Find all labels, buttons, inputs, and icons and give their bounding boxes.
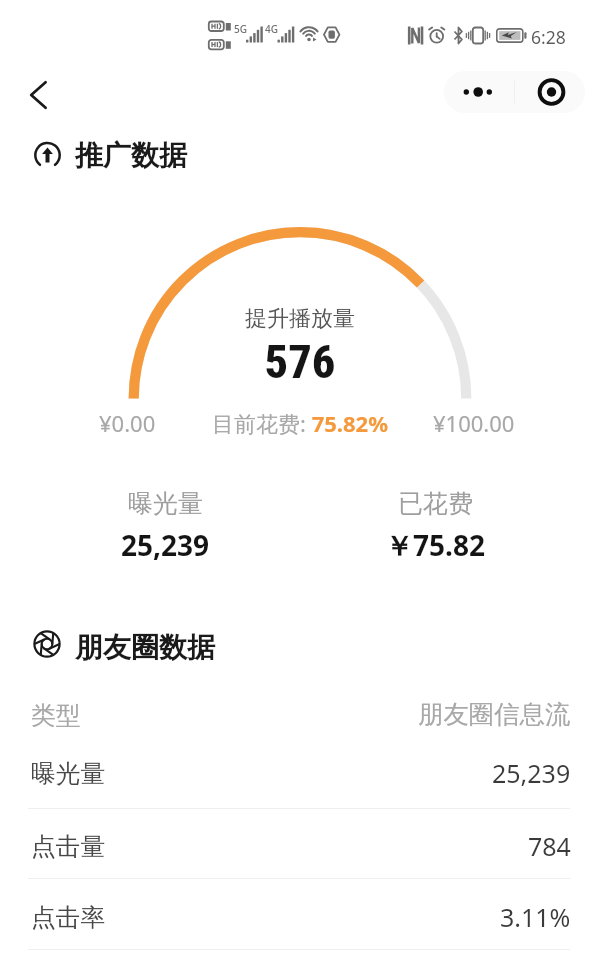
staticText: 576 (0, 335, 600, 389)
staticText: 目前花费: 75.82% (0, 408, 600, 438)
staticText: 提升播放量 (0, 305, 600, 333)
staticText: 点击量 (31, 831, 106, 862)
button[interactable]: 曝光量 (0, 744, 600, 802)
staticText: 朋友圈数据 (75, 630, 215, 665)
staticText: 朋友圈信息流 (418, 699, 571, 731)
button[interactable]: 点击量 (0, 817, 600, 875)
staticText: 已花费 (398, 488, 473, 519)
staticText: ¥0.00 (99, 408, 156, 438)
staticText: 25,239 (492, 756, 571, 790)
button[interactable]: Close mini program (515, 71, 585, 113)
staticText: 4G (265, 22, 278, 36)
staticText: 5G (234, 22, 247, 36)
button[interactable]: 点击率 (0, 888, 600, 946)
button[interactable]: Back (17, 73, 61, 117)
staticText: 曝光量 (128, 488, 203, 519)
staticText: 推广数据 (75, 138, 187, 173)
button[interactable]: 类型 (0, 699, 600, 739)
staticText: ￥75.82 (385, 526, 485, 564)
staticText: 类型 (31, 700, 81, 731)
staticText: 784 (528, 829, 571, 863)
button[interactable]: More options (444, 71, 514, 113)
staticText: 3.11% (500, 900, 571, 934)
staticText: 6:28 (531, 25, 566, 49)
staticText: 25,239 (121, 526, 210, 564)
staticText: 曝光量 (31, 758, 106, 789)
staticText: 点击率 (31, 902, 106, 933)
staticText: ¥100.00 (433, 408, 515, 438)
